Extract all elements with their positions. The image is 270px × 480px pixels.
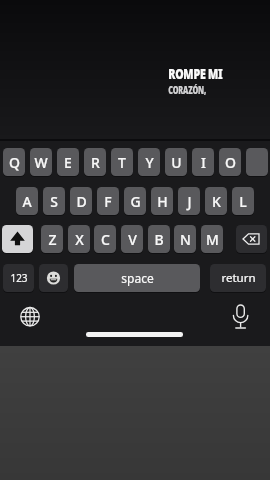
staticText: Y <box>145 153 154 172</box>
staticText: T <box>118 153 126 172</box>
staticText: 123 <box>10 271 28 285</box>
button[interactable]: Q <box>3 148 25 176</box>
staticText: E <box>64 153 72 172</box>
staticText: Z <box>48 230 57 249</box>
staticText: B <box>154 230 164 249</box>
button[interactable]: G <box>124 187 146 215</box>
button[interactable]: R <box>84 148 106 176</box>
staticText: Q <box>9 153 20 172</box>
button[interactable]: A <box>16 187 38 215</box>
staticText: CORAZÓN, <box>168 83 206 97</box>
staticText: L <box>239 192 247 211</box>
staticText: C <box>101 230 110 249</box>
staticText: O <box>225 153 236 172</box>
button[interactable]: D <box>70 187 92 215</box>
button[interactable]: N <box>174 225 196 253</box>
button[interactable]: Z <box>41 225 63 253</box>
staticText: V <box>128 230 137 249</box>
button[interactable]: Y <box>138 148 160 176</box>
staticText: F <box>104 192 112 211</box>
staticText: space <box>121 270 154 286</box>
button[interactable]: F <box>97 187 119 215</box>
button[interactable]: W <box>30 148 52 176</box>
button[interactable] <box>236 225 267 253</box>
staticText: H <box>157 192 168 211</box>
staticText: I <box>201 153 206 172</box>
button[interactable]: B <box>148 225 170 253</box>
staticText: S <box>50 192 58 211</box>
staticText: X <box>75 230 84 249</box>
button[interactable]: U <box>165 148 187 176</box>
staticText: N <box>180 230 191 249</box>
button[interactable] <box>2 225 33 253</box>
staticText: U <box>171 153 182 172</box>
button[interactable] <box>18 305 42 329</box>
staticText: W <box>34 153 48 172</box>
button[interactable]: S <box>43 187 65 215</box>
button[interactable]: O <box>219 148 241 176</box>
button[interactable]: K <box>205 187 227 215</box>
staticText: M <box>206 230 219 249</box>
button[interactable]: X <box>68 225 90 253</box>
button[interactable]: 123 <box>3 264 34 292</box>
staticText: J <box>187 192 192 211</box>
button[interactable] <box>228 302 254 332</box>
staticText: K <box>212 192 221 211</box>
staticText: G <box>130 192 141 211</box>
button[interactable]: return <box>210 264 266 292</box>
staticText: R <box>91 153 100 172</box>
staticText: D <box>76 192 87 211</box>
button[interactable]: M <box>201 225 223 253</box>
button[interactable]: C <box>94 225 116 253</box>
button[interactable]: T <box>111 148 133 176</box>
button[interactable] <box>39 264 68 292</box>
staticText: return <box>221 270 256 286</box>
button[interactable] <box>246 148 268 176</box>
button[interactable]: space <box>74 264 200 292</box>
button[interactable]: V <box>121 225 143 253</box>
staticText: A <box>22 192 32 211</box>
button[interactable]: J <box>178 187 200 215</box>
button[interactable]: I <box>192 148 214 176</box>
staticText: ROMPE MI <box>168 64 223 83</box>
button[interactable]: H <box>151 187 173 215</box>
button[interactable]: E <box>57 148 79 176</box>
button[interactable]: L <box>232 187 254 215</box>
